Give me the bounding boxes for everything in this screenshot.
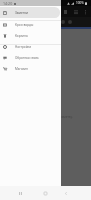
staticText: Корзина — [15, 34, 28, 38]
button[interactable]: New note — [60, 6, 70, 17]
button[interactable]: Notes tab — [58, 17, 67, 27]
button[interactable]: Back — [60, 186, 72, 200]
button[interactable]: Корзина — [0, 30, 60, 41]
button[interactable]: Заметки — [0, 7, 60, 18]
button[interactable]: Обратная связь — [0, 52, 60, 63]
button[interactable]: Reminders tab — [65, 17, 74, 27]
staticText: Настройки — [15, 45, 32, 49]
staticText: Кроссворды — [15, 23, 34, 27]
button[interactable]: More options — [80, 6, 90, 17]
staticText: Магазин — [15, 67, 28, 71]
button[interactable]: Настройки — [0, 41, 60, 52]
button[interactable]: Switch layout — [71, 6, 81, 17]
button[interactable]: Recents — [14, 186, 26, 200]
staticText: Заметки — [15, 11, 28, 15]
staticText: 14:20 — [3, 1, 13, 6]
staticText: Нажмите + , чтобы создать заметку. — [19, 115, 73, 119]
button[interactable]: Home — [39, 186, 51, 200]
button[interactable]: Магазин — [0, 63, 60, 74]
staticText: 100% — [76, 1, 84, 5]
button[interactable]: Кроссворды — [0, 19, 60, 30]
staticText: Обратная связь — [15, 56, 39, 60]
